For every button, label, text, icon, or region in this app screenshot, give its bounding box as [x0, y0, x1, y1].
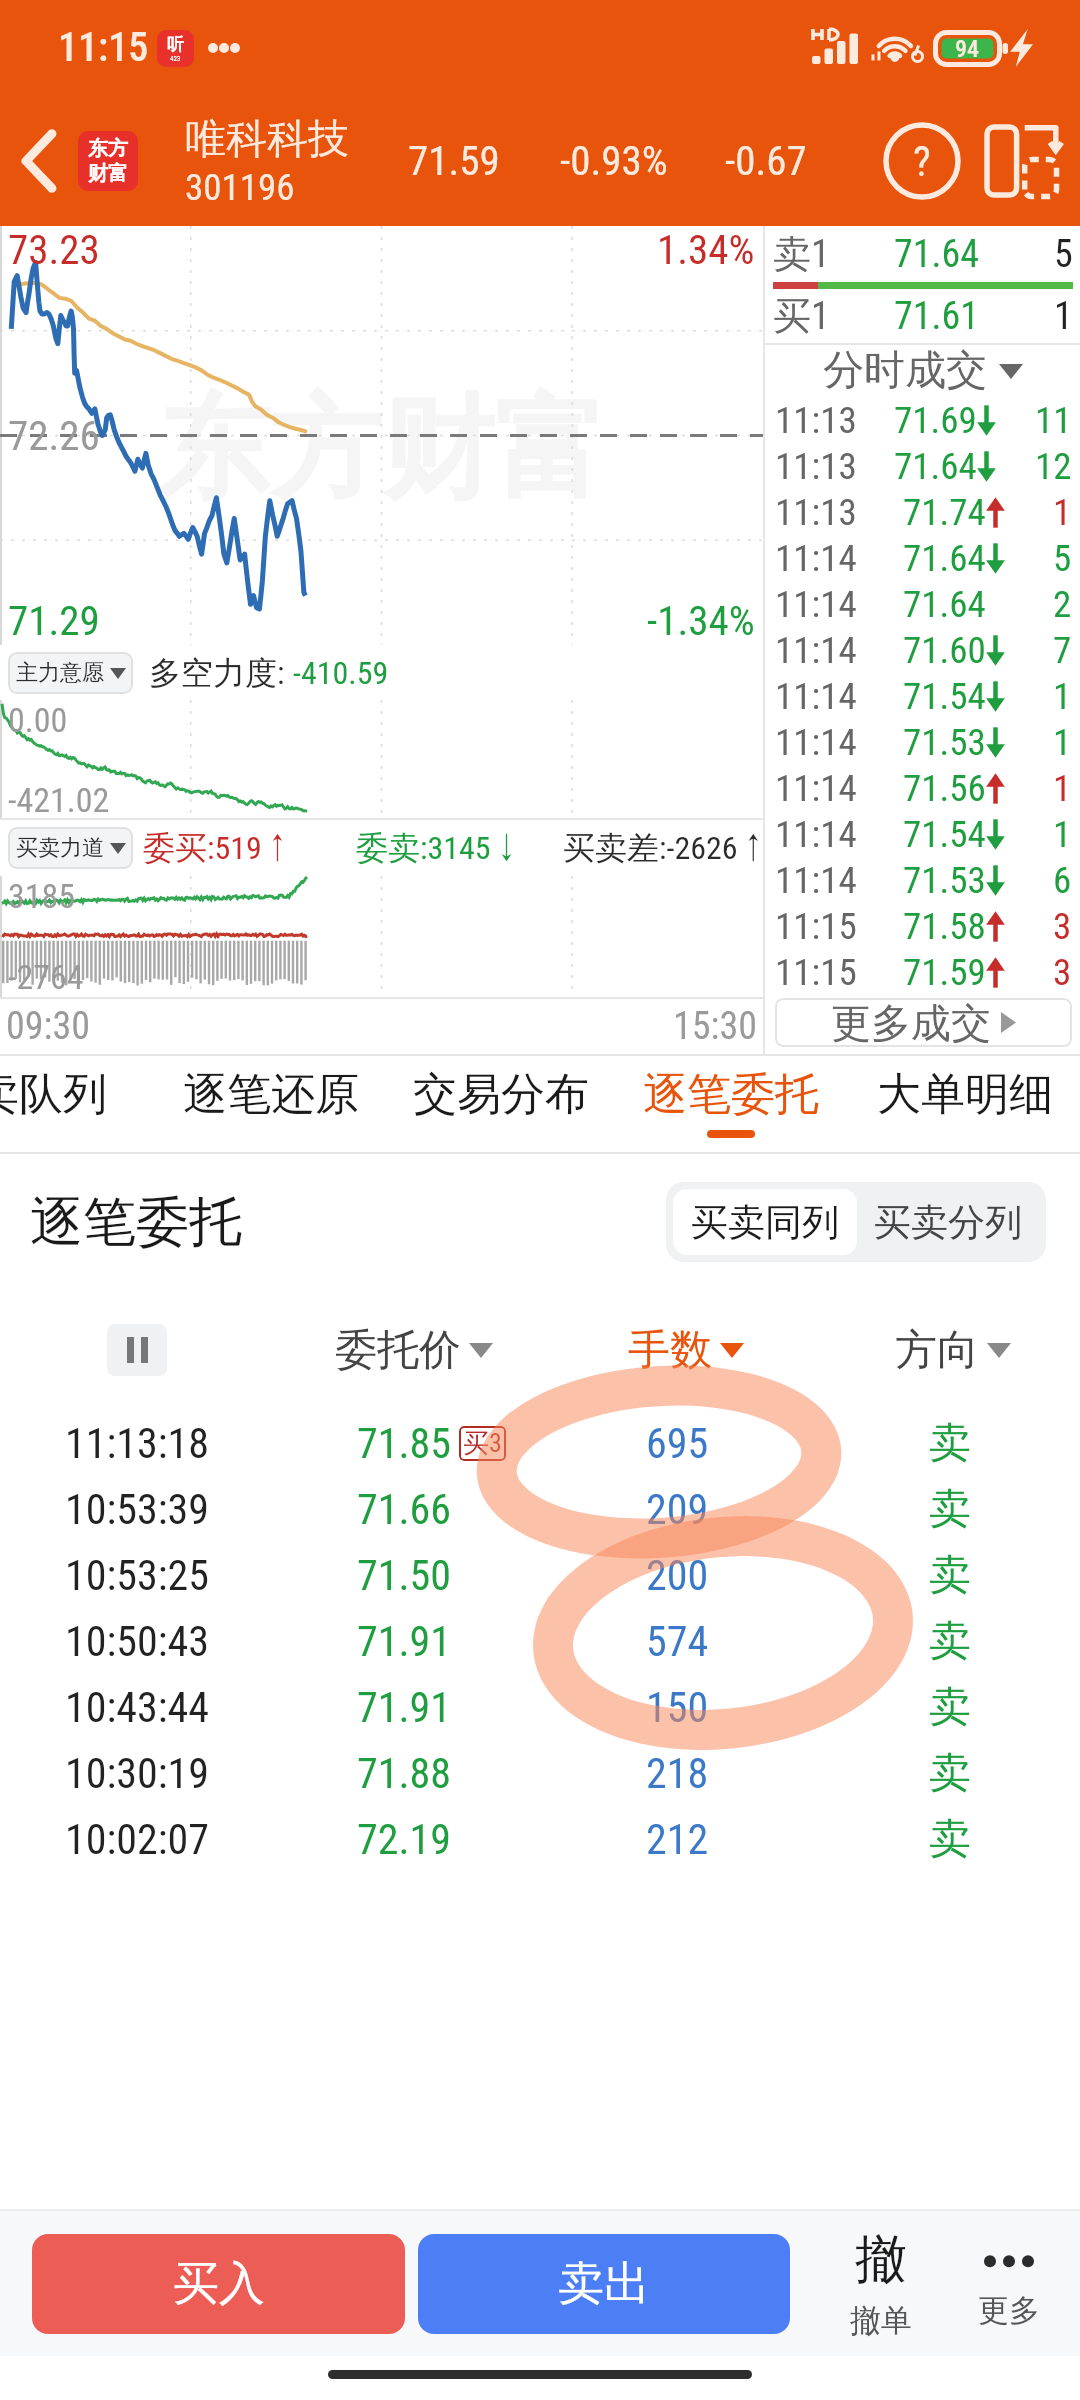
- button[interactable]: 撤: [840, 2227, 922, 2340]
- staticText: -0.67: [725, 137, 807, 185]
- staticText: 7: [1053, 629, 1072, 672]
- staticText: 买卖差:-2626↑: [563, 828, 763, 868]
- staticText: 10:50:43: [65, 1617, 210, 1666]
- button[interactable]: 方向: [823, 1290, 1080, 1410]
- staticText: 撤单: [850, 2301, 912, 2340]
- button[interactable]: 10:30:19: [0, 1740, 1080, 1806]
- button[interactable]: More: [968, 2237, 1050, 2330]
- staticText: 71.64: [894, 445, 977, 488]
- button[interactable]: 更多成交: [775, 998, 1072, 1047]
- button[interactable]: 买卖力道: [8, 827, 133, 869]
- button[interactable]: 卖队列: [0, 1056, 156, 1152]
- staticText: 5: [1054, 232, 1073, 277]
- staticText: 71.66: [357, 1485, 452, 1534]
- staticText: 11: [1035, 399, 1072, 442]
- button[interactable]: 大单明细: [846, 1056, 1080, 1152]
- staticText: 委卖:3145↓: [356, 828, 523, 868]
- button[interactable]: 10:53:25: [0, 1542, 1080, 1608]
- button[interactable]: 逐笔还原: [156, 1056, 386, 1152]
- button[interactable]: Pause: [107, 1324, 167, 1376]
- staticText: 方向: [895, 1324, 979, 1377]
- staticText: 11:14: [775, 629, 857, 672]
- staticText: 200: [646, 1551, 709, 1600]
- staticText: 11:15: [775, 951, 857, 994]
- staticText: 15:30: [673, 1004, 757, 1049]
- staticText: 71.61: [894, 294, 980, 339]
- staticText: -1.34%: [647, 597, 755, 645]
- button[interactable]: Back: [0, 96, 78, 226]
- staticText: 唯科科技: [185, 114, 349, 166]
- staticText: 卖1: [773, 230, 830, 278]
- staticText: 5: [1053, 537, 1072, 580]
- staticText: 71.29: [8, 597, 100, 645]
- staticText: 0.00: [8, 700, 68, 740]
- staticText: -421.02: [8, 780, 110, 820]
- staticText: 71.88: [357, 1749, 452, 1798]
- staticText: 3: [1053, 951, 1072, 994]
- button[interactable]: 委托价: [284, 1290, 544, 1410]
- staticText: 71.74: [903, 491, 986, 534]
- staticText: 手数: [628, 1324, 712, 1377]
- staticText: 更多: [978, 2291, 1040, 2330]
- staticText: 71.53: [903, 721, 986, 764]
- button[interactable]: 10:50:43: [0, 1608, 1080, 1674]
- staticText: 71.50: [357, 1551, 452, 1600]
- staticText: 委托价: [335, 1324, 461, 1377]
- button[interactable]: 11:13:18: [0, 1410, 1080, 1476]
- staticText: 695: [646, 1419, 709, 1468]
- button[interactable]: 分时成交: [765, 345, 1080, 397]
- button[interactable]: 主力意愿: [8, 652, 133, 694]
- staticText: 11:14: [775, 813, 857, 856]
- staticText: 11:14: [775, 675, 857, 718]
- staticText: 买卖力道: [16, 834, 104, 862]
- staticText: -0.93%: [560, 137, 668, 185]
- staticText: 71.58: [903, 905, 986, 948]
- button[interactable]: 10:43:44: [0, 1674, 1080, 1740]
- button[interactable]: 10:02:07: [0, 1806, 1080, 1872]
- staticText: 买卖分列: [874, 1199, 1022, 1246]
- staticText: 11:13: [775, 491, 857, 534]
- staticText: 分时成交: [823, 345, 987, 397]
- button[interactable]: 买卖同列: [673, 1189, 857, 1255]
- staticText: 大单明细: [877, 1067, 1053, 1122]
- staticText: 11:15: [775, 905, 857, 948]
- staticText: 买1: [773, 292, 830, 340]
- staticText: 71.85: [357, 1419, 452, 1468]
- button[interactable]: 交易分布: [386, 1056, 616, 1152]
- staticText: 212: [646, 1815, 709, 1864]
- staticText: 逐笔委托: [30, 1189, 242, 1256]
- staticText: 3185: [8, 876, 76, 916]
- button[interactable]: 买卖分列: [857, 1189, 1039, 1255]
- button[interactable]: 10:53:39: [0, 1476, 1080, 1542]
- button[interactable]: Change layout: [972, 112, 1070, 210]
- staticText: 卖队列: [0, 1067, 107, 1122]
- button[interactable]: 卖出: [418, 2234, 790, 2334]
- button[interactable]: 手数: [543, 1290, 829, 1410]
- staticText: 09:30: [6, 1004, 90, 1049]
- staticText: 买卖同列: [691, 1199, 839, 1246]
- staticText: 10:02:07: [65, 1815, 210, 1864]
- staticText: 71.64: [894, 232, 980, 277]
- staticText: 71.64: [903, 537, 986, 580]
- button[interactable]: 逐笔委托: [616, 1056, 846, 1152]
- button[interactable]: Help: [872, 111, 972, 211]
- staticText: 1.34%: [657, 226, 755, 274]
- staticText: 卖出: [558, 2255, 650, 2313]
- staticText: 1: [1053, 675, 1072, 718]
- staticText: 71.54: [903, 675, 986, 718]
- staticText: 301196: [185, 166, 295, 209]
- staticText: 买入: [173, 2255, 265, 2313]
- staticText: 71.59: [408, 137, 500, 185]
- staticText: 6: [1053, 859, 1072, 902]
- staticText: 11:14: [775, 721, 857, 764]
- staticText: 10:53:39: [65, 1485, 210, 1534]
- button[interactable]: 买入: [32, 2234, 405, 2334]
- staticText: ?: [913, 137, 931, 186]
- staticText: 卖: [929, 1483, 971, 1536]
- staticText: 1: [1053, 491, 1072, 534]
- staticText: 71.54: [903, 813, 986, 856]
- staticText: 71.60: [903, 629, 986, 672]
- staticText: 逐笔还原: [183, 1067, 359, 1122]
- staticText: 11:15: [58, 24, 149, 71]
- staticText: 东方: [88, 136, 128, 161]
